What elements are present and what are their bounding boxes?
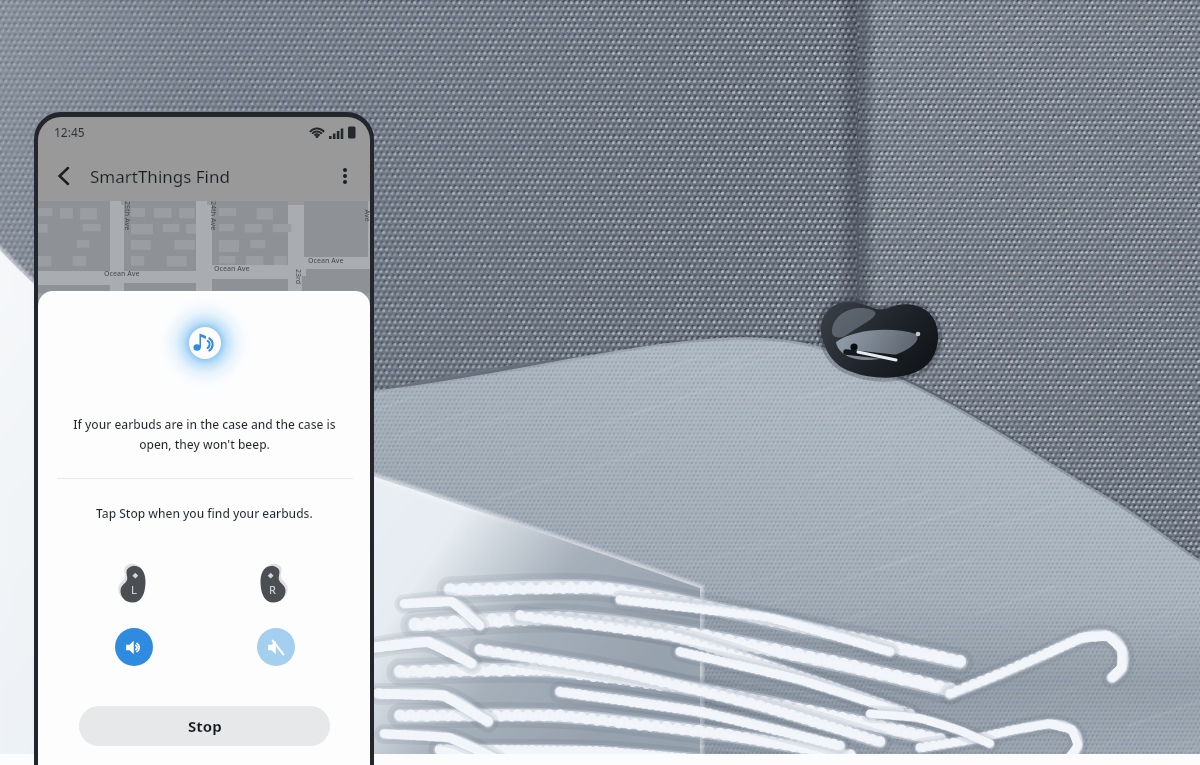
staticText: Ave — [361, 209, 370, 222]
staticText: SmartThings Find — [90, 165, 230, 188]
staticText: Ocean Ave — [214, 264, 250, 274]
staticText: Ocean Ave — [308, 256, 344, 266]
button[interactable]: More options — [320, 151, 370, 201]
staticText: R — [269, 582, 276, 597]
staticText: 12:45 — [54, 124, 85, 140]
button[interactable]: Play sound — [115, 628, 153, 666]
staticText: Tap Stop when you find your earbuds. — [96, 505, 313, 521]
staticText: 24th Ave — [208, 201, 218, 231]
staticText: If your earbuds are in the case and the … — [73, 416, 336, 452]
staticText: L — [131, 582, 137, 597]
button[interactable]: Left earbud — [112, 564, 152, 604]
staticText: Stop — [188, 716, 222, 736]
button[interactable]: Mute — [257, 628, 295, 666]
staticText: Ocean Ave — [104, 269, 140, 279]
button[interactable]: Back — [38, 150, 90, 202]
button[interactable]: Stop — [79, 706, 330, 746]
staticText: 25th Ave — [122, 201, 132, 231]
button[interactable]: Right earbud — [254, 564, 294, 604]
staticText: 23rd — [293, 269, 303, 285]
